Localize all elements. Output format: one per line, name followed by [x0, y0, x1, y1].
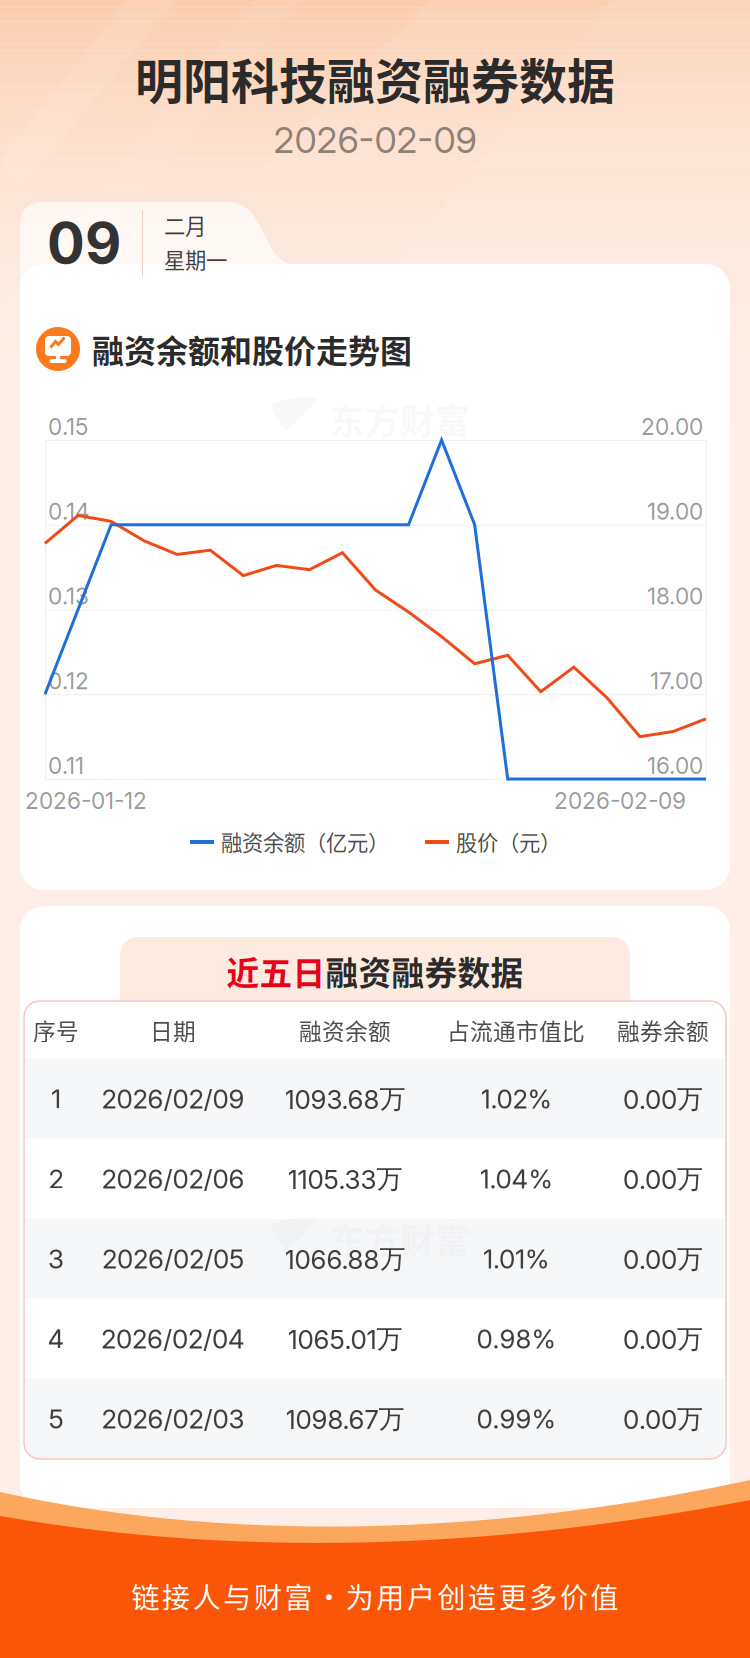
- staticText: 0.14: [48, 498, 90, 525]
- staticText: 日期: [150, 1014, 196, 1046]
- staticText: 09: [47, 209, 121, 277]
- staticText: 1.01%: [483, 1243, 549, 1275]
- staticText: 0.11: [48, 752, 84, 779]
- staticText: 东方财富: [330, 1214, 470, 1264]
- staticText: 融资余额（亿元）: [221, 826, 389, 857]
- staticText: 股价（元）: [456, 826, 561, 857]
- staticText: 2026/02/04: [101, 1323, 245, 1355]
- staticText: 0.00万: [623, 1323, 703, 1355]
- staticText: 东方财富: [330, 394, 470, 444]
- staticText: 2026-01-12: [25, 787, 147, 814]
- staticText: 占流通市值比: [447, 1014, 585, 1046]
- staticText: 0.15: [48, 413, 88, 440]
- staticText: 1.02%: [480, 1083, 551, 1115]
- staticText: 3: [48, 1243, 64, 1275]
- staticText: 二月: [164, 210, 206, 240]
- staticText: 融券余额: [617, 1014, 709, 1046]
- staticText: 19.00: [647, 498, 703, 525]
- staticText: 近五日: [226, 947, 325, 995]
- staticText: 20.00: [641, 413, 703, 440]
- staticText: 2026/02/06: [101, 1163, 244, 1195]
- staticText: 融资余额: [299, 1014, 391, 1046]
- staticText: 0.00万: [623, 1243, 703, 1275]
- staticText: 17.00: [650, 667, 703, 695]
- staticText: 2026-02-09: [273, 118, 476, 162]
- staticText: 融资融券数据: [325, 947, 523, 995]
- staticText: 4: [47, 1323, 64, 1355]
- staticText: 0.12: [48, 667, 89, 695]
- staticText: 1.04%: [479, 1163, 552, 1195]
- staticText: 2026/02/09: [101, 1083, 244, 1115]
- staticText: 18.00: [647, 582, 703, 610]
- staticText: 2026-02-09: [554, 787, 686, 814]
- staticText: 2026/02/03: [101, 1403, 244, 1435]
- staticText: 序号: [33, 1014, 79, 1046]
- staticText: 0.98%: [476, 1323, 555, 1355]
- staticText: 星期一: [164, 243, 227, 274]
- staticText: 2026/02/05: [102, 1243, 244, 1275]
- staticText: 链接人与财富·为用户创造更多价值: [131, 1576, 618, 1616]
- staticText: 0.99%: [476, 1403, 555, 1435]
- staticText: 1: [51, 1083, 61, 1115]
- staticText: 1105.33万: [287, 1163, 402, 1195]
- staticText: 2: [48, 1163, 63, 1195]
- staticText: 0.13: [48, 582, 89, 610]
- staticText: 16.00: [647, 752, 703, 779]
- staticText: 融资余额和股价走势图: [92, 326, 412, 372]
- staticText: 5: [48, 1403, 63, 1435]
- staticText: 1065.01万: [287, 1323, 402, 1355]
- staticText: 0.00万: [623, 1083, 703, 1115]
- staticText: 1098.67万: [285, 1403, 404, 1435]
- staticText: 1093.68万: [284, 1083, 405, 1115]
- staticText: 0.00万: [623, 1403, 703, 1435]
- button[interactable]: 融资余额和股价走势图: [36, 327, 696, 371]
- staticText: 0.00万: [623, 1163, 703, 1195]
- staticText: 明阳科技融资融券数据: [135, 43, 615, 113]
- staticText: 1066.88万: [284, 1243, 405, 1275]
